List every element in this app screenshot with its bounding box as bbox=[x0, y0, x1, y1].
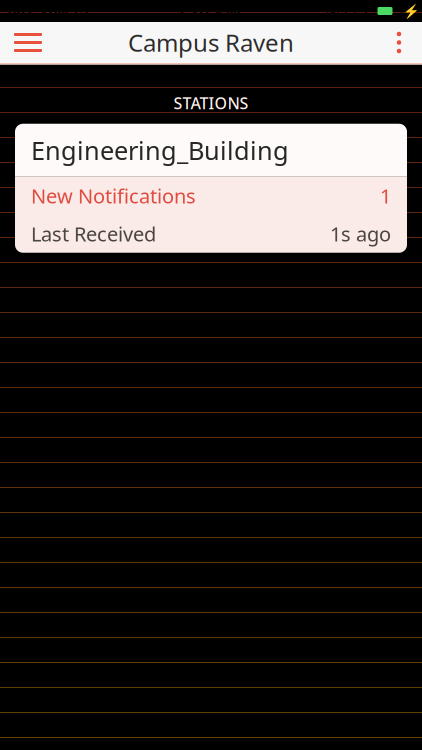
staticText: New Notifications bbox=[31, 182, 196, 209]
staticText: Campus Raven bbox=[128, 27, 294, 58]
button[interactable]: Menu bbox=[0, 20, 56, 64]
staticText: Engineering_Building bbox=[31, 133, 289, 167]
staticText: 1 bbox=[380, 182, 391, 209]
staticText: ⚡ bbox=[403, 3, 420, 19]
button[interactable]: Engineering_Building bbox=[15, 124, 407, 253]
staticText: 5:26 PM bbox=[174, 0, 241, 22]
staticText: Last Received bbox=[31, 220, 156, 247]
staticText bbox=[69, 0, 74, 22]
staticText: 1s ago bbox=[330, 220, 391, 247]
button[interactable]: More options bbox=[376, 20, 422, 64]
staticText: No SIM bbox=[7, 0, 69, 22]
staticText: STATIONS bbox=[173, 92, 248, 114]
